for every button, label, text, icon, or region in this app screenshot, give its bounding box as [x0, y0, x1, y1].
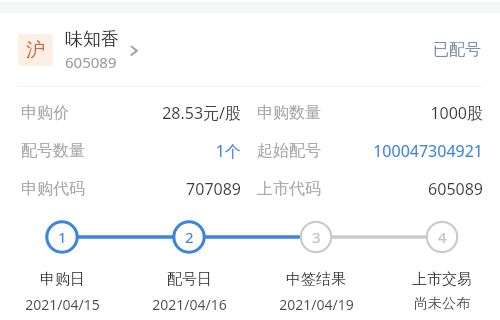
button[interactable]: 申购日 [6, 270, 118, 314]
staticText: 605089 [428, 178, 483, 200]
staticText: 起始配号 [257, 141, 321, 161]
staticText: 28.53元/股 [162, 102, 241, 124]
button[interactable]: 沪 [18, 26, 144, 74]
staticText: 上市交易 [412, 270, 472, 289]
staticText: 配号日 [167, 270, 212, 289]
staticText: 申购代码 [21, 179, 85, 199]
staticText: 605089 [65, 52, 117, 72]
staticText: 申购价 [21, 103, 69, 123]
staticText: 申购日 [40, 270, 85, 289]
staticText: 1个 [215, 140, 241, 162]
staticText: 4 [438, 227, 447, 247]
staticText: 1000股 [430, 102, 483, 124]
staticText: 沪 [26, 38, 45, 62]
button[interactable]: 配号日 [133, 270, 245, 314]
staticText: 100047304921 [373, 140, 483, 162]
staticText: 申购数量 [257, 103, 321, 123]
staticText: 上市代码 [257, 179, 321, 199]
staticText: 3 [312, 227, 321, 247]
staticText: 中签结果 [286, 270, 346, 289]
staticText: 配号数量 [21, 141, 85, 161]
button[interactable]: 上市交易 [386, 270, 498, 313]
staticText: 2021/04/19 [279, 295, 354, 314]
button[interactable]: 已配号 [429, 32, 485, 68]
staticText: 味知香 [65, 28, 119, 51]
staticText: 尚未公布 [414, 295, 470, 313]
staticText: 707089 [186, 178, 241, 200]
button[interactable]: 中签结果 [260, 270, 372, 314]
staticText: 2021/04/16 [152, 295, 227, 314]
other: Stock details [128, 38, 144, 62]
staticText: 1 [58, 227, 67, 247]
staticText: 2 [185, 227, 194, 247]
staticText: 2021/04/15 [25, 295, 100, 314]
staticText: 已配号 [433, 40, 481, 60]
